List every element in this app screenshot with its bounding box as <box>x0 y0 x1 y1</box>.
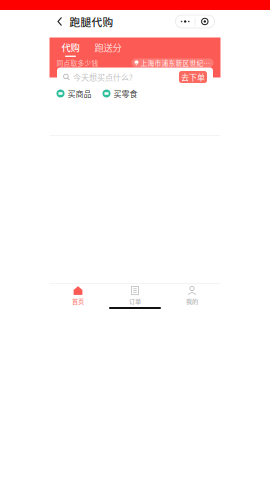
button[interactable]: 订单 <box>106 284 163 307</box>
button[interactable]: 买商品 <box>56 88 91 99</box>
button[interactable]: 上海市浦东新区世纪… <box>131 58 213 67</box>
button[interactable]: 首页 <box>49 284 106 307</box>
staticText: 我的 <box>186 297 198 305</box>
button[interactable]: 返回 <box>55 10 64 32</box>
staticText: 跑送分 <box>94 40 121 54</box>
staticText: 代购 <box>61 40 79 54</box>
button[interactable]: 跑送分 <box>94 40 121 57</box>
staticText: 订单 <box>129 297 141 305</box>
staticText: 买零食 <box>113 88 137 99</box>
button[interactable]: 代购 <box>61 40 79 57</box>
button[interactable]: 今天想买点什么? <box>63 67 175 86</box>
staticText: 同点取多少钱 <box>56 58 98 68</box>
button[interactable]: 买零食 <box>102 88 137 99</box>
staticText: 首页 <box>72 297 84 305</box>
staticText: 去下单 <box>181 71 205 83</box>
staticText: 跑腿代购 <box>69 14 113 29</box>
staticText: 上海市浦东新区世纪… <box>140 58 210 68</box>
staticText: 今天想买点什么? <box>73 71 133 83</box>
button[interactable]: 我的 <box>163 284 220 307</box>
button[interactable]: 去下单 <box>179 71 207 83</box>
staticText: 买商品 <box>67 88 91 99</box>
